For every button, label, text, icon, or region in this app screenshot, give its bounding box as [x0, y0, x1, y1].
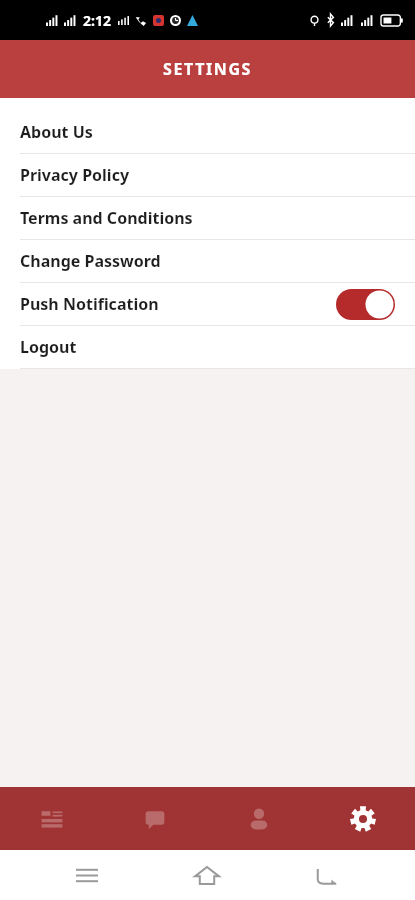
button[interactable]: Feed [0, 787, 103, 850]
staticText: Push Notification [20, 293, 159, 315]
staticText: Terms and Conditions [20, 207, 193, 229]
button[interactable]: About Us [0, 111, 415, 153]
staticText: Privacy Policy [20, 164, 130, 186]
button[interactable]: Messages [103, 787, 207, 850]
button[interactable]: Push Notification [0, 283, 415, 325]
staticText: Logout [20, 336, 77, 358]
button[interactable]: Recent apps [67, 855, 107, 895]
staticText: Change Password [20, 250, 161, 272]
staticText: SETTINGS [163, 58, 252, 80]
button[interactable]: Push notification toggle [336, 289, 395, 320]
staticText: 2:12 [83, 11, 111, 30]
staticText: About Us [20, 121, 93, 143]
button[interactable]: Change Password [0, 240, 415, 282]
button[interactable]: Logout [0, 326, 415, 368]
button[interactable]: Home [187, 855, 227, 895]
button[interactable]: Terms and Conditions [0, 197, 415, 239]
button[interactable]: Back [307, 855, 347, 895]
button[interactable]: Settings [311, 787, 415, 850]
button[interactable]: Profile [207, 787, 311, 850]
button[interactable]: Privacy Policy [0, 154, 415, 196]
